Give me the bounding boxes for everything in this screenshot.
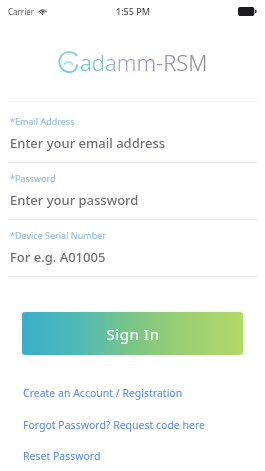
staticText: Enter your password: [10, 191, 139, 209]
staticText: Enter your email address: [10, 134, 166, 152]
staticText: adamm-RSM: [80, 47, 208, 77]
button[interactable]: *Email Address: [0, 115, 265, 172]
staticText: Reset Password: [23, 449, 101, 463]
staticText: Forgot Password? Request code here: [23, 418, 205, 432]
button[interactable]: Forgot Password? Request code here: [0, 409, 265, 441]
button[interactable]: Reset Password: [0, 441, 265, 471]
button[interactable]: Sign In: [22, 312, 243, 355]
staticText: *Device Serial Number: [10, 229, 106, 241]
button[interactable]: *Device Serial Number: [0, 229, 265, 286]
staticText: *Email Address: [10, 115, 75, 127]
button[interactable]: *Password: [0, 172, 265, 229]
staticText: 1:55 PM: [116, 5, 150, 17]
staticText: *Password: [10, 172, 56, 184]
staticText: Create an Account / Registration: [23, 386, 183, 400]
button[interactable]: Create an Account / Registration: [0, 377, 265, 409]
staticText: Carrier: [8, 6, 35, 17]
staticText: For e.g. A01005: [10, 248, 106, 266]
staticText: Sign In: [106, 324, 160, 344]
